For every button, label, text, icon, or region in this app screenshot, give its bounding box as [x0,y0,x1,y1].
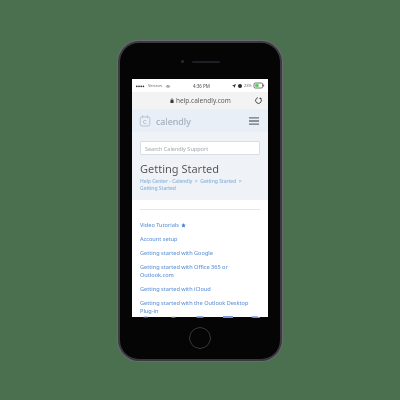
staticText: Getting started with the Outlook Desktop… [140,299,260,314]
staticText: calendly [156,115,191,127]
button[interactable]: help.calendly.com [132,92,268,109]
staticText: Search Calendly Support [145,145,209,152]
button[interactable]: Search Calendly Support [140,141,260,155]
staticText: help.calendly.com [176,96,231,105]
staticText: Help Center - Calendly > Getting Started… [140,178,260,192]
staticText: Account setup [140,235,178,243]
staticText: Getting started with Google [140,249,213,257]
button[interactable]: Getting started with Office 365 or Outlo… [132,260,268,282]
button[interactable]: Getting started with Google [132,246,268,260]
staticText: Getting started with iCloud [140,285,211,293]
staticText: Getting started with Office 365 or Outlo… [140,263,260,279]
staticText: C [143,118,147,126]
staticText: Video Tutorials [140,221,179,229]
button[interactable]: Reload [254,96,263,105]
staticText: Verizon [148,83,163,88]
button[interactable]: Video Tutorials [132,218,268,232]
button[interactable]: Account setup [132,232,268,246]
button[interactable]: Getting started with iCloud [132,282,268,296]
button[interactable]: Menu [247,114,261,128]
staticText: 4:36 PM [193,83,210,89]
button[interactable]: Getting started with the Outlook Desktop… [132,296,268,317]
staticText: Getting Started [140,161,220,176]
staticText: 23% [244,83,252,88]
button[interactable]: C [139,115,191,127]
